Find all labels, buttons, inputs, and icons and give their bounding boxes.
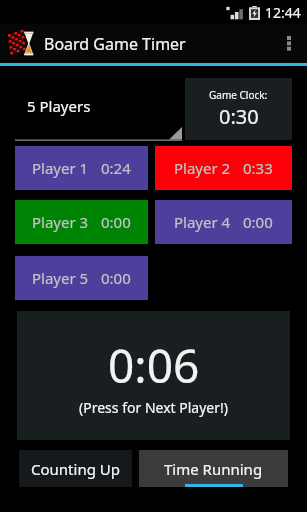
button[interactable]: 0:06 — [17, 311, 290, 440]
button[interactable]: Counting Up — [19, 450, 132, 487]
button[interactable]: More options — [271, 24, 307, 63]
staticText: Board Game Timer — [44, 33, 186, 55]
button[interactable]: Player 3 — [15, 200, 148, 244]
button[interactable]: 5 Players — [15, 78, 182, 141]
staticText: 12:44 — [265, 3, 301, 22]
staticText: Player 1 — [32, 158, 89, 178]
staticText: Time Running — [164, 459, 263, 479]
button[interactable]: Player 4 — [155, 200, 292, 244]
staticText: Player 3 — [32, 212, 89, 232]
staticText: 0:00 — [101, 268, 131, 288]
staticText: Game Clock: — [209, 88, 268, 102]
staticText: 0:00 — [243, 212, 273, 232]
staticText: 5 Players — [27, 96, 91, 116]
button[interactable]: Player 2 — [155, 146, 292, 190]
staticText: 0:00 — [101, 212, 131, 232]
staticText: 0:33 — [243, 158, 273, 178]
staticText: Player 4 — [174, 212, 231, 232]
staticText: Player 5 — [32, 268, 89, 288]
button[interactable]: Player 1 — [15, 146, 148, 190]
staticText: Counting Up — [31, 459, 120, 479]
staticText: 0:06 — [108, 334, 200, 397]
staticText: 0:24 — [101, 158, 131, 178]
button[interactable]: Time Running — [139, 450, 288, 487]
staticText: Player 2 — [174, 158, 231, 178]
staticText: 0:30 — [219, 103, 259, 130]
button[interactable]: Player 5 — [15, 256, 148, 300]
staticText: (Press for Next Player!) — [79, 398, 228, 417]
